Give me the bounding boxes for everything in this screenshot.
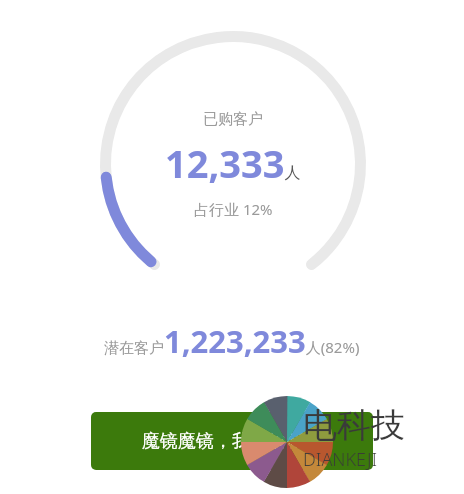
- staticText: DIANKEJI: [303, 447, 378, 472]
- staticText: 占行业 12%: [194, 199, 273, 219]
- button[interactable]: 魔镜魔镜，我要拉新！: [91, 412, 373, 470]
- staticText: 电科技: [303, 404, 405, 447]
- staticText: 潜在客户1,223,233人(82%): [104, 320, 360, 362]
- other: Watermark: [225, 390, 464, 494]
- staticText: 魔镜魔镜，我要拉新！: [142, 430, 322, 453]
- staticText: 12,333人: [165, 137, 301, 189]
- staticText: 已购客户: [203, 110, 263, 129]
